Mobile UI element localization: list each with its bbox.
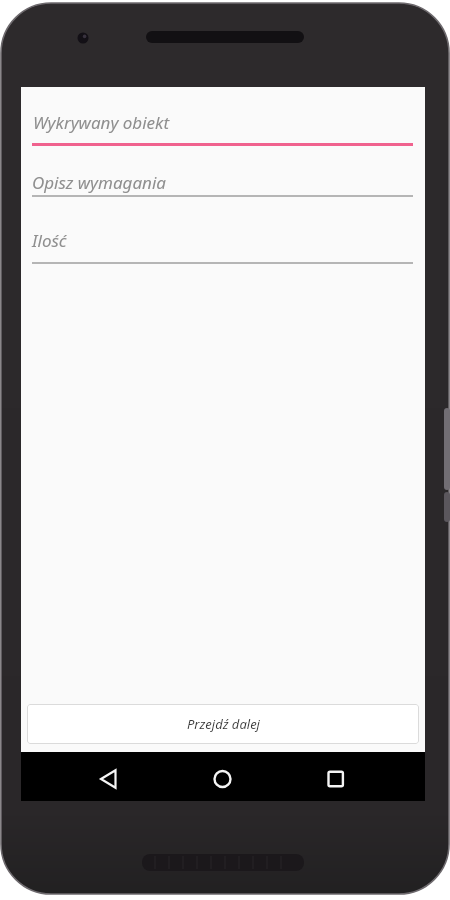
staticText: Opisz wymagania: [32, 171, 166, 194]
button[interactable]: Ilość: [32, 220, 415, 264]
button[interactable]: Wykrywany obiekt: [32, 103, 415, 147]
button[interactable]: Przejdź dalej: [27, 704, 419, 744]
button[interactable]: [87, 756, 129, 798]
button[interactable]: [199, 756, 241, 798]
button[interactable]: [314, 756, 356, 798]
staticText: Ilość: [32, 229, 67, 252]
staticText: Wykrywany obiekt: [33, 111, 170, 134]
staticText: Przejdź dalej: [187, 715, 260, 733]
button[interactable]: Opisz wymagania: [32, 162, 415, 198]
